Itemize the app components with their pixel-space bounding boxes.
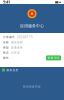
staticText: 20240115 — [17, 35, 33, 39]
staticText: 查看详情 — [47, 56, 59, 60]
button[interactable]: 查看详情 — [46, 55, 61, 60]
staticText: 类型 — [3, 46, 9, 49]
staticText: 名称 — [3, 41, 9, 44]
staticText: ▮▮▮ ▰ — [55, 0, 61, 3]
staticText: 应用服务中心 — [20, 23, 44, 28]
staticText: 订单编号 — [3, 35, 15, 39]
staticText: 测试名称 — [11, 41, 23, 44]
staticText: 已完成 — [11, 51, 20, 54]
staticText: 暂无更多内容 — [23, 85, 41, 88]
staticText: 状态 — [3, 51, 9, 54]
staticText: 普通业务 — [11, 46, 23, 49]
staticText: 操作 — [3, 56, 9, 60]
staticText: 9:41 — [3, 0, 10, 5]
staticText: 服务信息 — [6, 68, 18, 72]
